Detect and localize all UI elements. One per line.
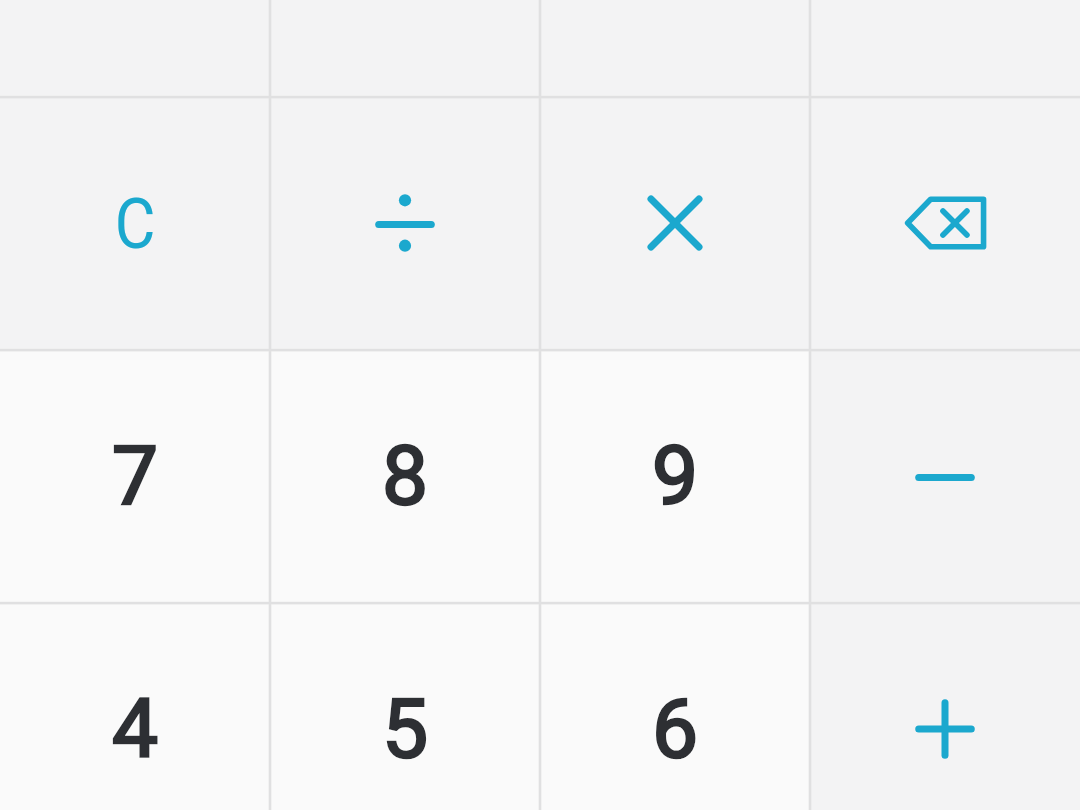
button[interactable]: Multiply (540, 96, 810, 349)
button[interactable]: 5 (270, 602, 540, 810)
button[interactable]: 8 (270, 349, 540, 602)
button[interactable]: Minus (810, 349, 1080, 602)
staticText: 8 (382, 428, 429, 524)
staticText: 7 (112, 428, 159, 524)
button[interactable]: 6 (540, 602, 810, 810)
button[interactable]: 4 (0, 602, 270, 810)
button[interactable]: Plus (810, 602, 1080, 810)
button[interactable]: Clear (0, 96, 270, 349)
staticText: 9 (652, 428, 699, 524)
button[interactable]: 7 (0, 349, 270, 602)
button[interactable]: Backspace (810, 96, 1080, 349)
staticText: 4 (112, 681, 159, 777)
staticText: 5 (382, 681, 429, 777)
button[interactable]: Divide (270, 96, 540, 349)
staticText: C (115, 182, 156, 265)
staticText: 6 (652, 681, 699, 777)
button[interactable]: 9 (540, 349, 810, 602)
